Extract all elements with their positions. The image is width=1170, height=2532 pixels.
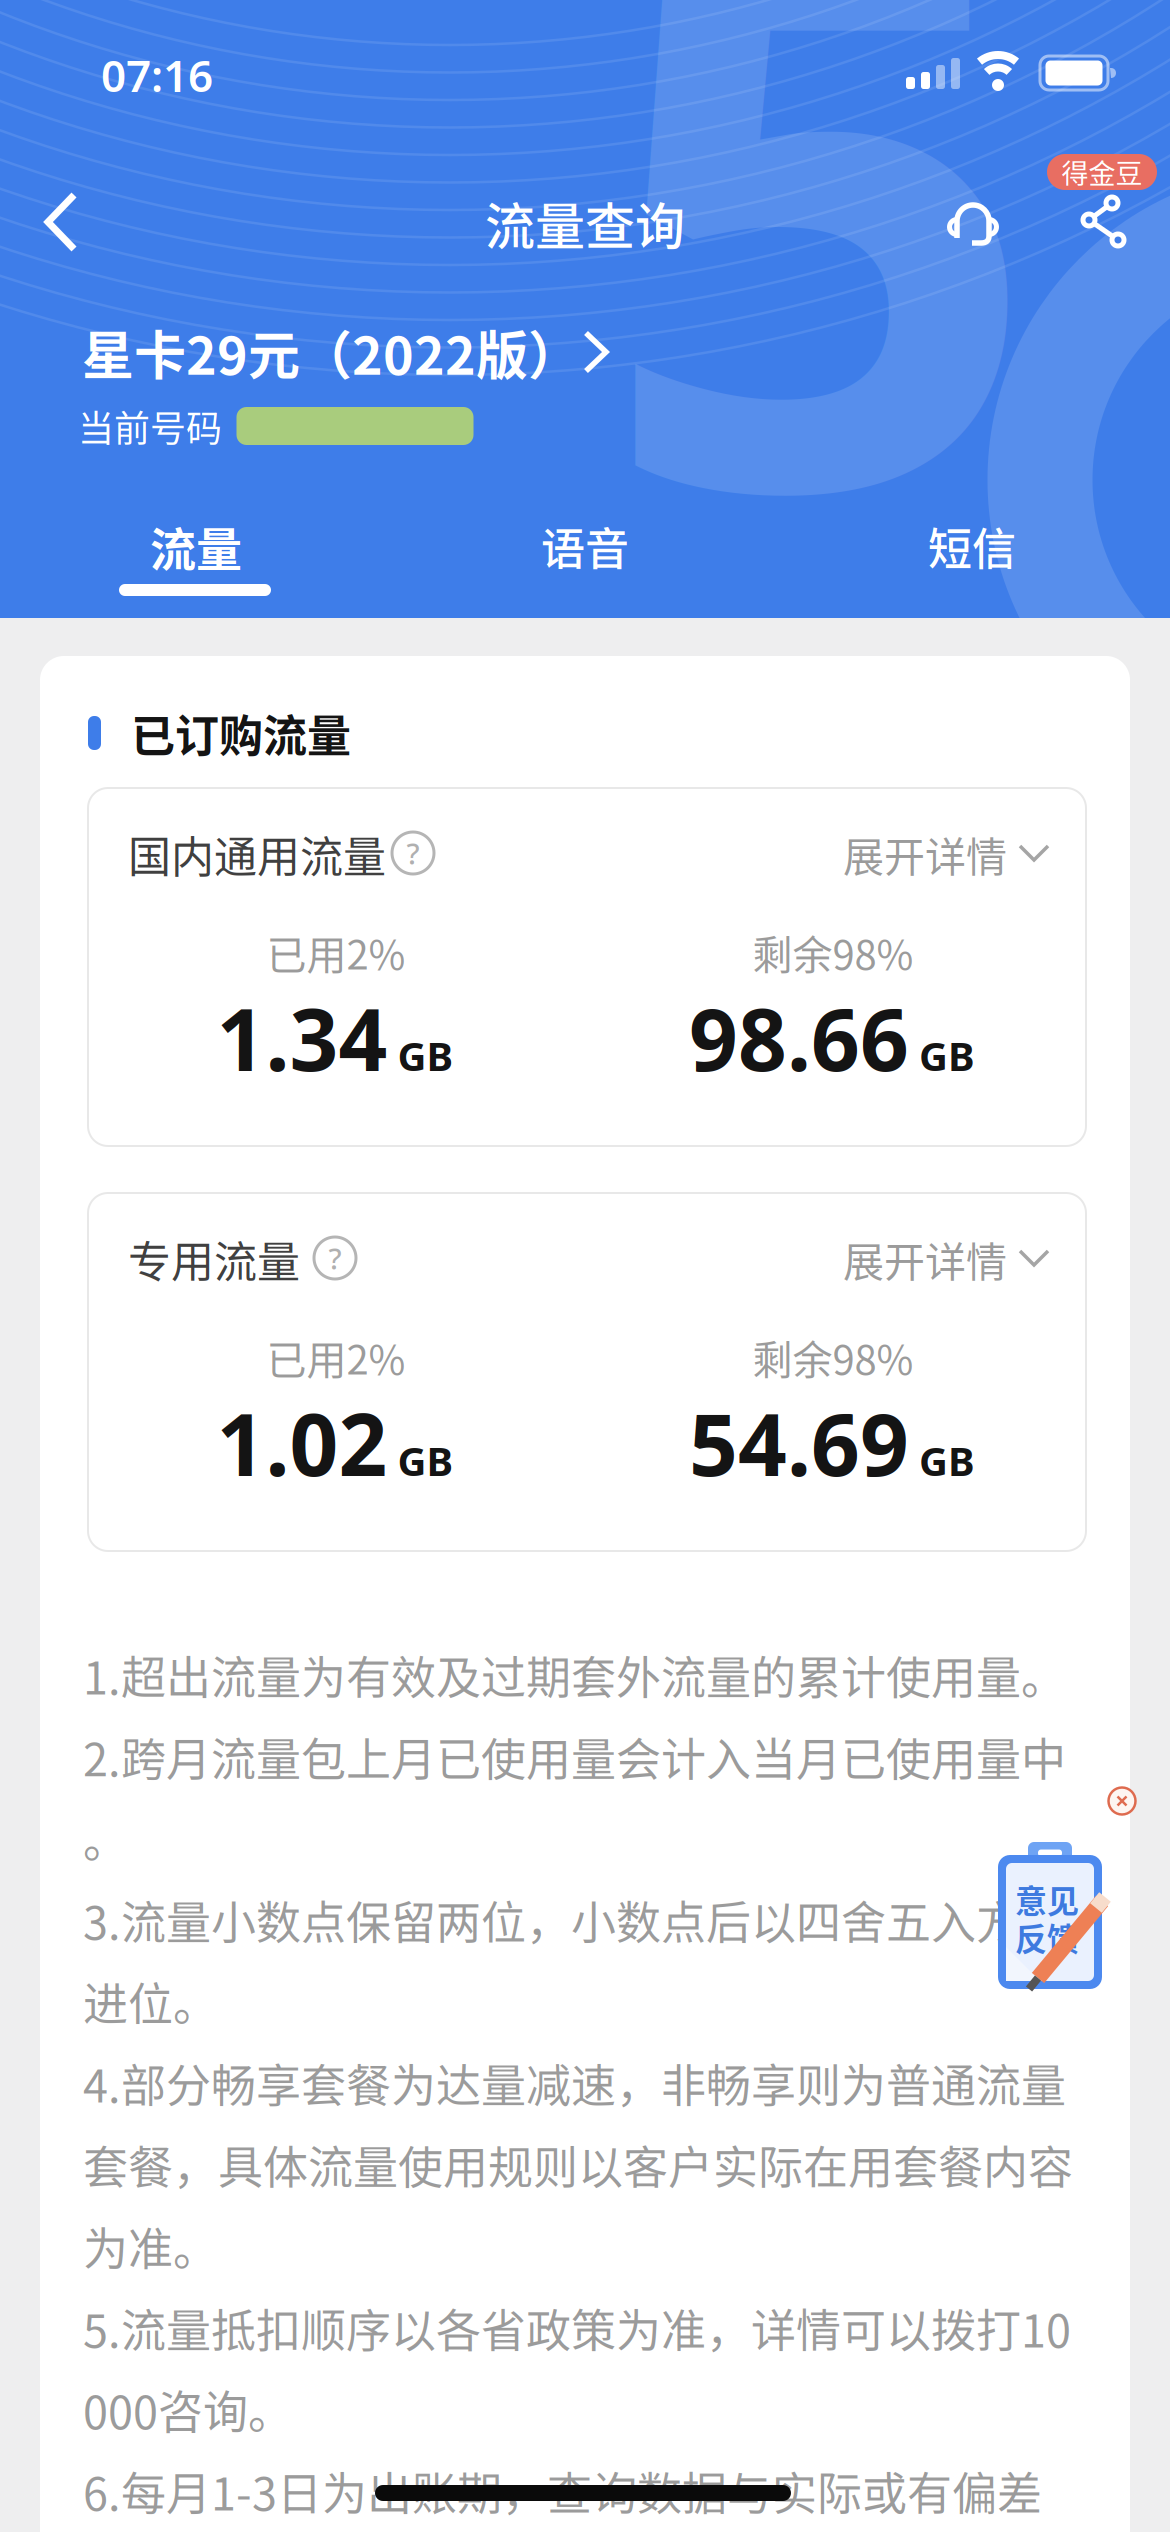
staticText: 2.跨月流量包上月已使用量会计入当月已使用量中	[83, 1724, 1066, 1789]
staticText: 1.超出流量为有效及过期套外流量的累计使用量。	[83, 1642, 1066, 1708]
button[interactable]: Close feedback	[1108, 1787, 1135, 1814]
staticText: 1.02	[216, 1386, 387, 1500]
staticText: 已订购流量	[131, 701, 351, 765]
staticText: 98.66	[689, 981, 909, 1095]
button[interactable]: Back	[44, 193, 80, 251]
button[interactable]: 流量	[150, 513, 242, 579]
staticText: 当前号码	[78, 400, 222, 452]
staticText: GB	[919, 1434, 975, 1487]
staticText: 反馈	[1015, 1914, 1079, 1960]
staticText: 剩余98%	[752, 923, 913, 981]
staticText: 剩余98%	[752, 1328, 913, 1386]
staticText: 短信	[928, 514, 1016, 578]
staticText: 07:16	[101, 46, 213, 104]
staticText: GB	[397, 1434, 453, 1487]
staticText: 展开详情	[843, 1229, 1007, 1289]
staticText: 语音	[541, 514, 629, 578]
staticText: 得金豆	[1061, 152, 1142, 192]
staticText: 星卡29元（2022版）	[82, 314, 580, 390]
staticText: GB	[919, 1029, 975, 1082]
staticText: 已用2%	[266, 1328, 405, 1386]
staticText: ?	[406, 833, 419, 872]
staticText: 3.流量小数点保留两位，小数点后以四舍五入方式	[83, 1887, 1066, 1952]
button[interactable]: Help	[314, 1237, 356, 1279]
staticText: 。	[83, 1806, 128, 1871]
button[interactable]: Help	[392, 832, 434, 874]
staticText: 流量查询	[485, 187, 685, 259]
staticText: 6.每月1-3日为出账期，查询数据与实际或有偏差	[83, 2458, 1042, 2524]
staticText: 国内通用流量	[128, 823, 386, 885]
staticText: 5	[597, 0, 1043, 703]
button[interactable]: 得金豆	[1047, 154, 1157, 190]
staticText: 专用流量	[128, 1228, 300, 1290]
staticText: 展开详情	[843, 824, 1007, 884]
staticText: ?	[328, 1238, 341, 1277]
staticText: GB	[397, 1029, 453, 1082]
button[interactable]: 展开详情	[843, 1229, 1049, 1289]
staticText: 5.流量抵扣顺序以各省政策为准，详情可以拨打10	[83, 2295, 1071, 2360]
staticText: 为准。	[83, 2214, 218, 2279]
button[interactable]: Feedback	[998, 1841, 1108, 1991]
button[interactable]: 展开详情	[843, 824, 1049, 884]
staticText: 54.69	[689, 1386, 909, 1500]
staticText: 进位。	[83, 1969, 218, 2034]
staticText: 意见	[1015, 1876, 1079, 1922]
staticText: 套餐，具体流量使用规则以客户实际在用套餐内容	[83, 2132, 1073, 2197]
staticText: 4.部分畅享套餐为达量减速，非畅享则为普通流量	[83, 2050, 1066, 2116]
staticText: 1.34	[216, 981, 387, 1095]
staticText: 已用2%	[266, 923, 405, 981]
staticText: 000咨询。	[83, 2377, 293, 2442]
button[interactable]: 语音	[541, 514, 629, 578]
staticText: 流量	[150, 513, 242, 579]
button[interactable]: Customer service	[941, 193, 1005, 257]
button[interactable]: Share	[1072, 189, 1136, 253]
button[interactable]: 星卡29元（2022版）	[82, 314, 614, 390]
button[interactable]: 短信	[928, 514, 1016, 578]
